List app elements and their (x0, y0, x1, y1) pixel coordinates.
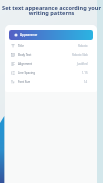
staticText: Title (18, 44, 24, 48)
staticText: Justified (77, 62, 88, 66)
staticText: Roboto (78, 44, 88, 48)
staticText: 14 (84, 80, 88, 84)
button[interactable]: Alignment (9, 59, 88, 68)
staticText: Set text appearance according your writi… (1, 4, 102, 17)
staticText: Font Size (18, 80, 31, 84)
staticText: Roboto Slab (72, 53, 88, 57)
button[interactable]: Font Size (9, 77, 88, 86)
staticText: Line Spacing (18, 71, 36, 75)
staticText: Body Text (18, 53, 32, 57)
staticText: Alignment (18, 62, 33, 66)
button[interactable]: Title (9, 41, 88, 50)
button[interactable]: Appearance (9, 30, 93, 40)
button[interactable]: Body Text (9, 50, 88, 59)
staticText: Appearance (20, 33, 38, 37)
button[interactable]: Line Spacing (9, 68, 88, 77)
staticText: 1.15 (82, 71, 88, 75)
